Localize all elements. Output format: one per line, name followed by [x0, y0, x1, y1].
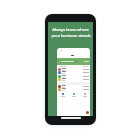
button[interactable] — [58, 88, 89, 91]
button[interactable] — [58, 71, 89, 74]
button[interactable] — [58, 75, 89, 78]
button[interactable]: Add — [86, 111, 89, 114]
button[interactable]: Tab — [71, 93, 76, 97]
button[interactable]: Tab — [82, 93, 87, 97]
button[interactable]: Search — [59, 60, 77, 63]
button[interactable] — [58, 78, 89, 81]
staticText: Always know where — [52, 26, 89, 32]
button[interactable]: Tab — [60, 93, 65, 97]
button[interactable] — [58, 85, 89, 88]
button[interactable] — [58, 68, 89, 71]
staticText: your business stands — [51, 32, 91, 38]
